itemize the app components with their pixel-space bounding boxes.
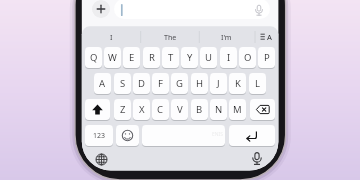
- button[interactable]: [116, 125, 139, 146]
- staticText: Z: [120, 103, 126, 116]
- staticText: S: [120, 77, 126, 90]
- button[interactable]: J: [210, 73, 227, 94]
- button[interactable]: B: [191, 99, 208, 120]
- staticText: F: [158, 77, 163, 90]
- button[interactable]: L: [249, 73, 266, 94]
- button[interactable]: [142, 125, 225, 146]
- button[interactable]: [85, 99, 110, 120]
- staticText: Q: [90, 51, 98, 64]
- button[interactable]: H: [191, 73, 208, 94]
- staticText: N: [215, 103, 223, 116]
- button[interactable]: M: [229, 99, 246, 120]
- staticText: I: [110, 32, 113, 42]
- staticText: A: [99, 77, 106, 90]
- button[interactable]: F: [152, 73, 169, 94]
- staticText: W: [108, 51, 117, 64]
- staticText: D: [138, 77, 145, 90]
- button[interactable]: Q: [85, 47, 102, 68]
- button[interactable]: Z: [114, 99, 131, 120]
- button[interactable]: A: [264, 30, 275, 44]
- staticText: ENIS: [212, 131, 224, 138]
- button[interactable]: P: [258, 47, 275, 68]
- staticText: R: [149, 51, 155, 64]
- staticText: C: [157, 103, 164, 116]
- button[interactable]: S: [114, 73, 131, 94]
- staticText: Y: [187, 51, 193, 64]
- button[interactable]: V: [171, 99, 188, 120]
- staticText: K: [235, 77, 241, 90]
- button[interactable]: O: [239, 47, 256, 68]
- button[interactable]: I: [91, 30, 131, 44]
- button[interactable]: [229, 125, 275, 146]
- staticText: M: [233, 103, 242, 116]
- staticText: I: [227, 51, 231, 64]
- button[interactable]: D: [133, 73, 150, 94]
- staticText: A: [267, 32, 272, 42]
- staticText: 123: [93, 131, 106, 141]
- staticText: H: [196, 77, 204, 90]
- button[interactable]: W: [104, 47, 121, 68]
- button[interactable]: [114, 0, 270, 19]
- button[interactable]: T: [162, 47, 179, 68]
- staticText: X: [139, 103, 145, 116]
- button[interactable]: 123: [85, 125, 113, 146]
- button[interactable]: E: [123, 47, 140, 68]
- staticText: I'm: [221, 32, 232, 42]
- button[interactable]: I: [220, 47, 237, 68]
- button[interactable]: I'm: [206, 30, 246, 44]
- button[interactable]: G: [171, 73, 188, 94]
- staticText: J: [217, 77, 220, 90]
- staticText: V: [177, 103, 183, 116]
- button[interactable]: Y: [181, 47, 198, 68]
- button[interactable]: [249, 151, 265, 167]
- button[interactable]: U: [200, 47, 217, 68]
- button[interactable]: [92, 0, 110, 18]
- button[interactable]: [250, 99, 275, 120]
- button[interactable]: C: [152, 99, 169, 120]
- staticText: U: [205, 51, 212, 64]
- staticText: O: [244, 51, 252, 64]
- button[interactable]: R: [143, 47, 160, 68]
- button[interactable]: The: [150, 30, 190, 44]
- staticText: The: [164, 32, 177, 42]
- button[interactable]: K: [229, 73, 246, 94]
- button[interactable]: N: [210, 99, 227, 120]
- staticText: P: [264, 51, 270, 64]
- button[interactable]: X: [133, 99, 150, 120]
- staticText: T: [168, 51, 174, 64]
- staticText: E: [129, 51, 135, 64]
- staticText: L: [255, 77, 260, 90]
- button[interactable]: A: [94, 73, 111, 94]
- staticText: G: [176, 77, 183, 90]
- staticText: B: [196, 103, 203, 116]
- button[interactable]: [93, 151, 110, 168]
